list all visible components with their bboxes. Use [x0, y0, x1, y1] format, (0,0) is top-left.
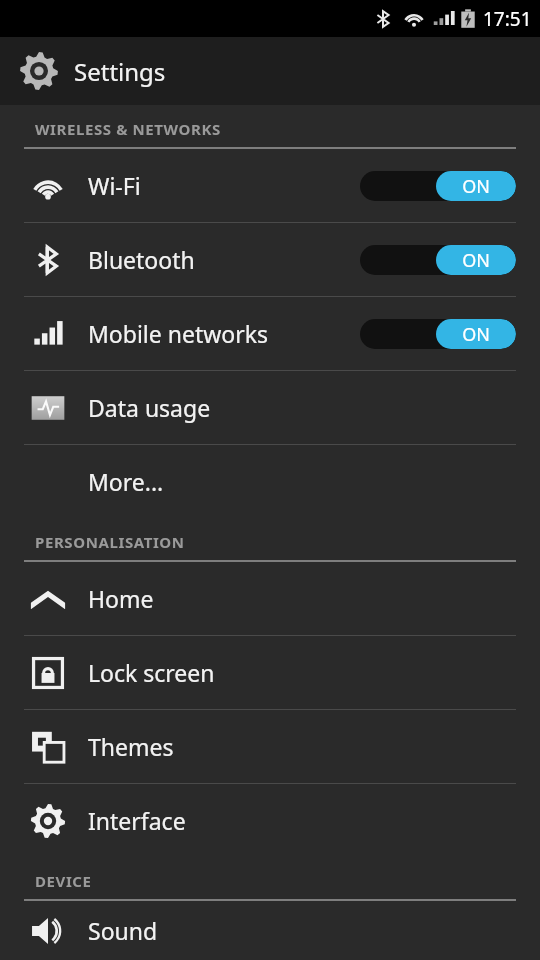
staticText: Data usage — [88, 392, 211, 423]
button[interactable]: Home — [0, 562, 540, 635]
staticText: 17:51 — [483, 6, 532, 32]
staticText: PERSONALISATION — [35, 532, 185, 552]
staticText: WIRELESS & NETWORKS — [35, 119, 221, 139]
button[interactable]: Toggle on — [360, 171, 516, 201]
button[interactable]: Wi-Fi — [0, 149, 540, 222]
staticText: ON — [462, 174, 490, 199]
button[interactable]: Settings — [0, 37, 540, 105]
button[interactable]: Bluetooth — [0, 223, 540, 296]
button[interactable]: Toggle on — [360, 245, 516, 275]
staticText: Themes — [88, 731, 174, 762]
button[interactable]: More... — [0, 445, 540, 518]
staticText: ON — [462, 322, 490, 347]
button[interactable]: Lock screen — [0, 636, 540, 709]
button[interactable]: Interface — [0, 784, 540, 857]
staticText: Sound — [88, 915, 158, 946]
staticText: ON — [462, 248, 490, 273]
button[interactable]: Sound — [0, 901, 540, 960]
staticText: DEVICE — [35, 871, 92, 891]
staticText: Mobile networks — [88, 318, 269, 349]
staticText: Settings — [74, 55, 166, 88]
button[interactable]: Data usage — [0, 371, 540, 444]
staticText: Wi-Fi — [88, 170, 141, 201]
staticText: Bluetooth — [88, 244, 195, 275]
staticText: Lock screen — [88, 657, 215, 688]
button[interactable]: Mobile networks — [0, 297, 540, 370]
button[interactable]: Themes — [0, 710, 540, 783]
staticText: Interface — [88, 805, 186, 836]
staticText: Home — [88, 583, 154, 614]
button[interactable]: Toggle on — [360, 319, 516, 349]
staticText: More... — [88, 466, 164, 497]
